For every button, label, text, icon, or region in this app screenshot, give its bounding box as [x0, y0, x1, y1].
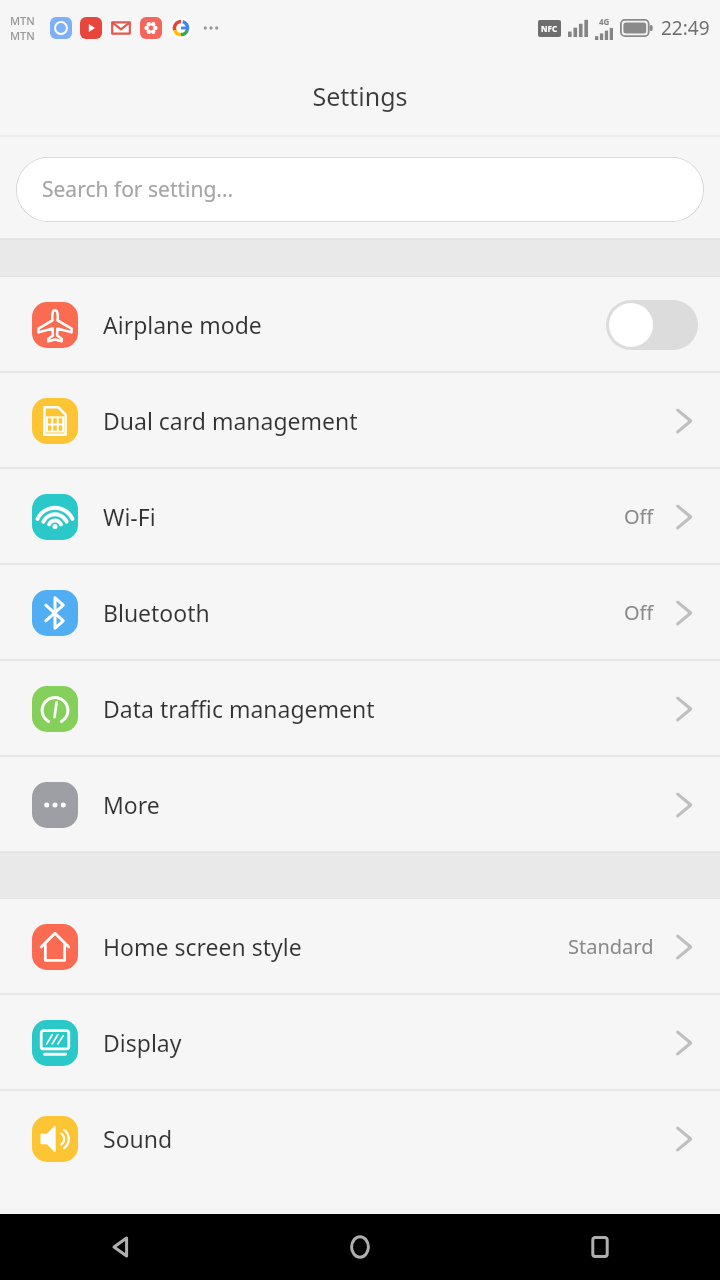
button[interactable]: Search for setting...: [16, 157, 704, 222]
staticText: Settings: [312, 79, 408, 113]
staticText: Off: [624, 503, 654, 530]
staticText: NFC: [541, 23, 558, 34]
staticText: Standard: [568, 933, 654, 960]
staticText: Home screen style: [103, 931, 568, 962]
staticText: Display: [103, 1027, 672, 1058]
staticText: 4G: [599, 16, 610, 27]
staticText: Search for setting...: [42, 175, 234, 204]
button[interactable]: Dual card management: [0, 373, 720, 468]
staticText: More: [103, 789, 672, 820]
staticText: MTN: [10, 13, 35, 28]
button[interactable]: Sound: [0, 1091, 720, 1186]
button[interactable]: Home: [240, 1214, 480, 1280]
staticText: Dual card management: [103, 405, 672, 436]
staticText: Sound: [103, 1123, 672, 1154]
staticText: Airplane mode: [103, 309, 606, 340]
button[interactable]: Bluetooth: [0, 565, 720, 660]
staticText: Wi-Fi: [103, 501, 624, 532]
staticText: 22:49: [661, 15, 710, 41]
button[interactable]: Home screen style: [0, 899, 720, 994]
button[interactable]: Data traffic management: [0, 661, 720, 756]
staticText: Bluetooth: [103, 597, 624, 628]
staticText: MTN: [10, 28, 35, 43]
button[interactable]: Wi-Fi: [0, 469, 720, 564]
button[interactable]: Recent apps: [480, 1214, 720, 1280]
staticText: Off: [624, 599, 654, 626]
button[interactable]: Airplane mode: [0, 277, 720, 372]
button[interactable]: More: [0, 757, 720, 852]
button[interactable]: Airplane mode toggle: [606, 300, 698, 350]
staticText: Data traffic management: [103, 693, 672, 724]
button[interactable]: Display: [0, 995, 720, 1090]
button[interactable]: Back: [0, 1214, 240, 1280]
